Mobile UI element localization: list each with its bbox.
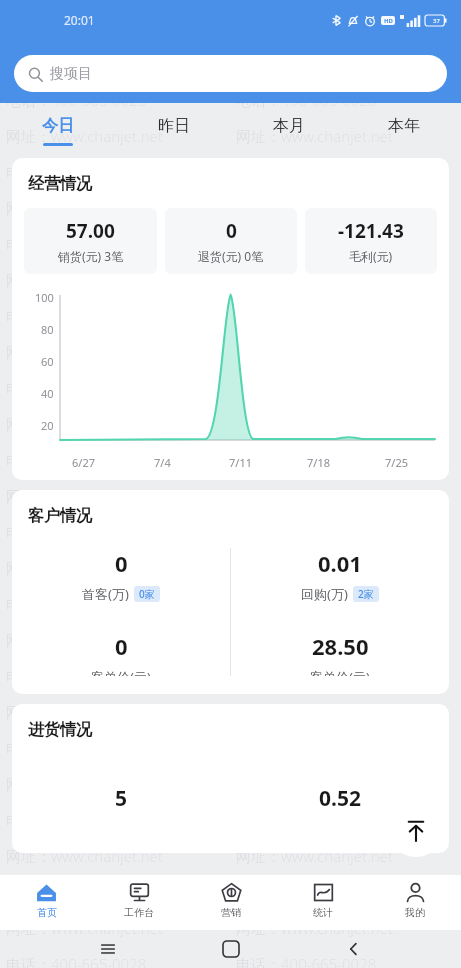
staticText: 7/18	[307, 455, 330, 470]
staticText: 今日	[42, 116, 74, 136]
staticText: 5	[115, 784, 128, 813]
staticText: 2家	[358, 587, 374, 601]
staticText: 电话：400-665-0028	[6, 234, 147, 254]
staticText: 100	[35, 290, 54, 305]
staticText: 网址：www.chanjet.net	[236, 342, 393, 362]
staticText: 网址：www.chanjet.net	[6, 198, 163, 218]
button[interactable]: Scroll to top	[389, 803, 443, 857]
staticText: 搜项目	[50, 65, 92, 83]
staticText: 网址：www.chanjet.net	[6, 702, 163, 722]
button[interactable]: 工作台	[93, 875, 185, 930]
staticText: 网址：www.chanjet.net	[236, 918, 393, 938]
button[interactable]: 本月	[231, 103, 346, 158]
staticText: 电话：400-665-0028	[236, 450, 377, 470]
staticText: 营销	[221, 906, 241, 919]
staticText: 电话：400-665-0028	[236, 954, 377, 968]
staticText: 电话：400-665-0028	[6, 522, 147, 542]
staticText: 经营情况	[28, 174, 92, 194]
staticText: 网址：www.chanjet.net	[6, 54, 163, 74]
button[interactable]: 统计	[277, 875, 369, 930]
staticText: 80	[41, 322, 54, 337]
staticText: 网址：www.chanjet.net	[6, 558, 163, 578]
staticText: 网址：www.chanjet.net	[6, 774, 163, 794]
button[interactable]: 0	[165, 208, 297, 274]
staticText: 电话：400-665-0028	[236, 378, 377, 398]
staticText: 电话：400-665-0028	[236, 90, 377, 110]
staticText: 0.52	[319, 784, 361, 813]
staticText: 网址：www.chanjet.net	[236, 630, 393, 650]
button[interactable]: 首页	[0, 875, 93, 930]
button[interactable]: 今日	[0, 103, 116, 158]
staticText: 网址：www.chanjet.net	[236, 486, 393, 506]
staticText: 首客(万)	[82, 585, 129, 603]
staticText: 电话：400-665-0028	[6, 738, 147, 758]
staticText: 电话：400-665-0028	[6, 450, 147, 470]
staticText: 网址：www.chanjet.net	[236, 774, 393, 794]
staticText: 40	[41, 386, 54, 401]
button[interactable]: 57.00	[24, 208, 157, 274]
staticText: 退货(元) 0笔	[198, 248, 264, 264]
staticText: -121.43	[338, 218, 404, 244]
staticText: 37	[433, 17, 440, 25]
button[interactable]: 本年	[346, 103, 461, 158]
button[interactable]: 搜项目	[14, 55, 447, 92]
staticText: 20:01	[64, 12, 95, 28]
staticText: 28.50	[312, 631, 369, 661]
staticText: 6/27	[72, 455, 95, 470]
staticText: 网址：www.chanjet.net	[6, 486, 163, 506]
staticText: 网址：www.chanjet.net	[236, 54, 393, 74]
staticText: 7/4	[154, 455, 171, 470]
staticText: 电话：400-665-0028	[236, 594, 377, 614]
staticText: 电话：400-665-0028	[236, 234, 377, 254]
staticText: 网址：www.chanjet.net	[236, 270, 393, 290]
staticText: 统计	[313, 906, 333, 919]
staticText: 电话：400-665-0028	[236, 18, 377, 38]
staticText: 0家	[139, 587, 155, 601]
staticText: 网址：www.chanjet.net	[6, 126, 163, 146]
staticText: 网址：www.chanjet.net	[6, 270, 163, 290]
staticText: 网址：www.chanjet.net	[236, 126, 393, 146]
staticText: 电话：400-665-0028	[6, 810, 147, 830]
staticText: 电话：400-665-0028	[6, 666, 147, 686]
staticText: 20	[41, 418, 54, 433]
staticText: 网址：www.chanjet.net	[236, 414, 393, 434]
staticText: 电话：400-665-0028	[6, 162, 147, 182]
button[interactable]: 昨日	[116, 103, 231, 158]
staticText: 客户情况	[28, 506, 92, 526]
staticText: 电话：400-665-0028	[6, 378, 147, 398]
staticText: 网址：www.chanjet.net	[236, 198, 393, 218]
staticText: 电话：400-665-0028	[236, 882, 377, 902]
staticText: 网址：www.chanjet.net	[6, 414, 163, 434]
staticText: 电话：400-665-0028	[6, 90, 147, 110]
staticText: 电话：400-665-0028	[6, 594, 147, 614]
staticText: HD	[384, 17, 393, 25]
staticText: 60	[41, 354, 54, 369]
staticText: 客单价(元)	[91, 668, 151, 676]
button[interactable]: 我的	[369, 875, 461, 930]
staticText: 网址：www.chanjet.net	[236, 846, 393, 866]
staticText: 昨日	[158, 116, 190, 136]
staticText: 57.00	[66, 218, 115, 244]
staticText: 网址：www.chanjet.net	[6, 846, 163, 866]
staticText: 0	[115, 548, 128, 578]
staticText: 0	[226, 218, 237, 244]
staticText: 电话：400-665-0028	[6, 306, 147, 326]
staticText: 销货(元) 3笔	[58, 248, 124, 264]
staticText: 本月	[273, 116, 305, 136]
button[interactable]: 营销	[185, 875, 277, 930]
staticText: 电话：400-665-0028	[6, 882, 147, 902]
staticText: 我的	[405, 906, 425, 919]
staticText: 电话：400-665-0028	[6, 954, 147, 968]
staticText: 网址：www.chanjet.net	[6, 918, 163, 938]
staticText: 回购(万)	[301, 585, 348, 603]
button[interactable]: -121.43	[305, 208, 437, 274]
staticText: 客单价(元)	[310, 668, 370, 676]
staticText: 毛利(元)	[349, 248, 393, 264]
staticText: 首页	[37, 906, 57, 919]
staticText: 网址：www.chanjet.net	[6, 630, 163, 650]
